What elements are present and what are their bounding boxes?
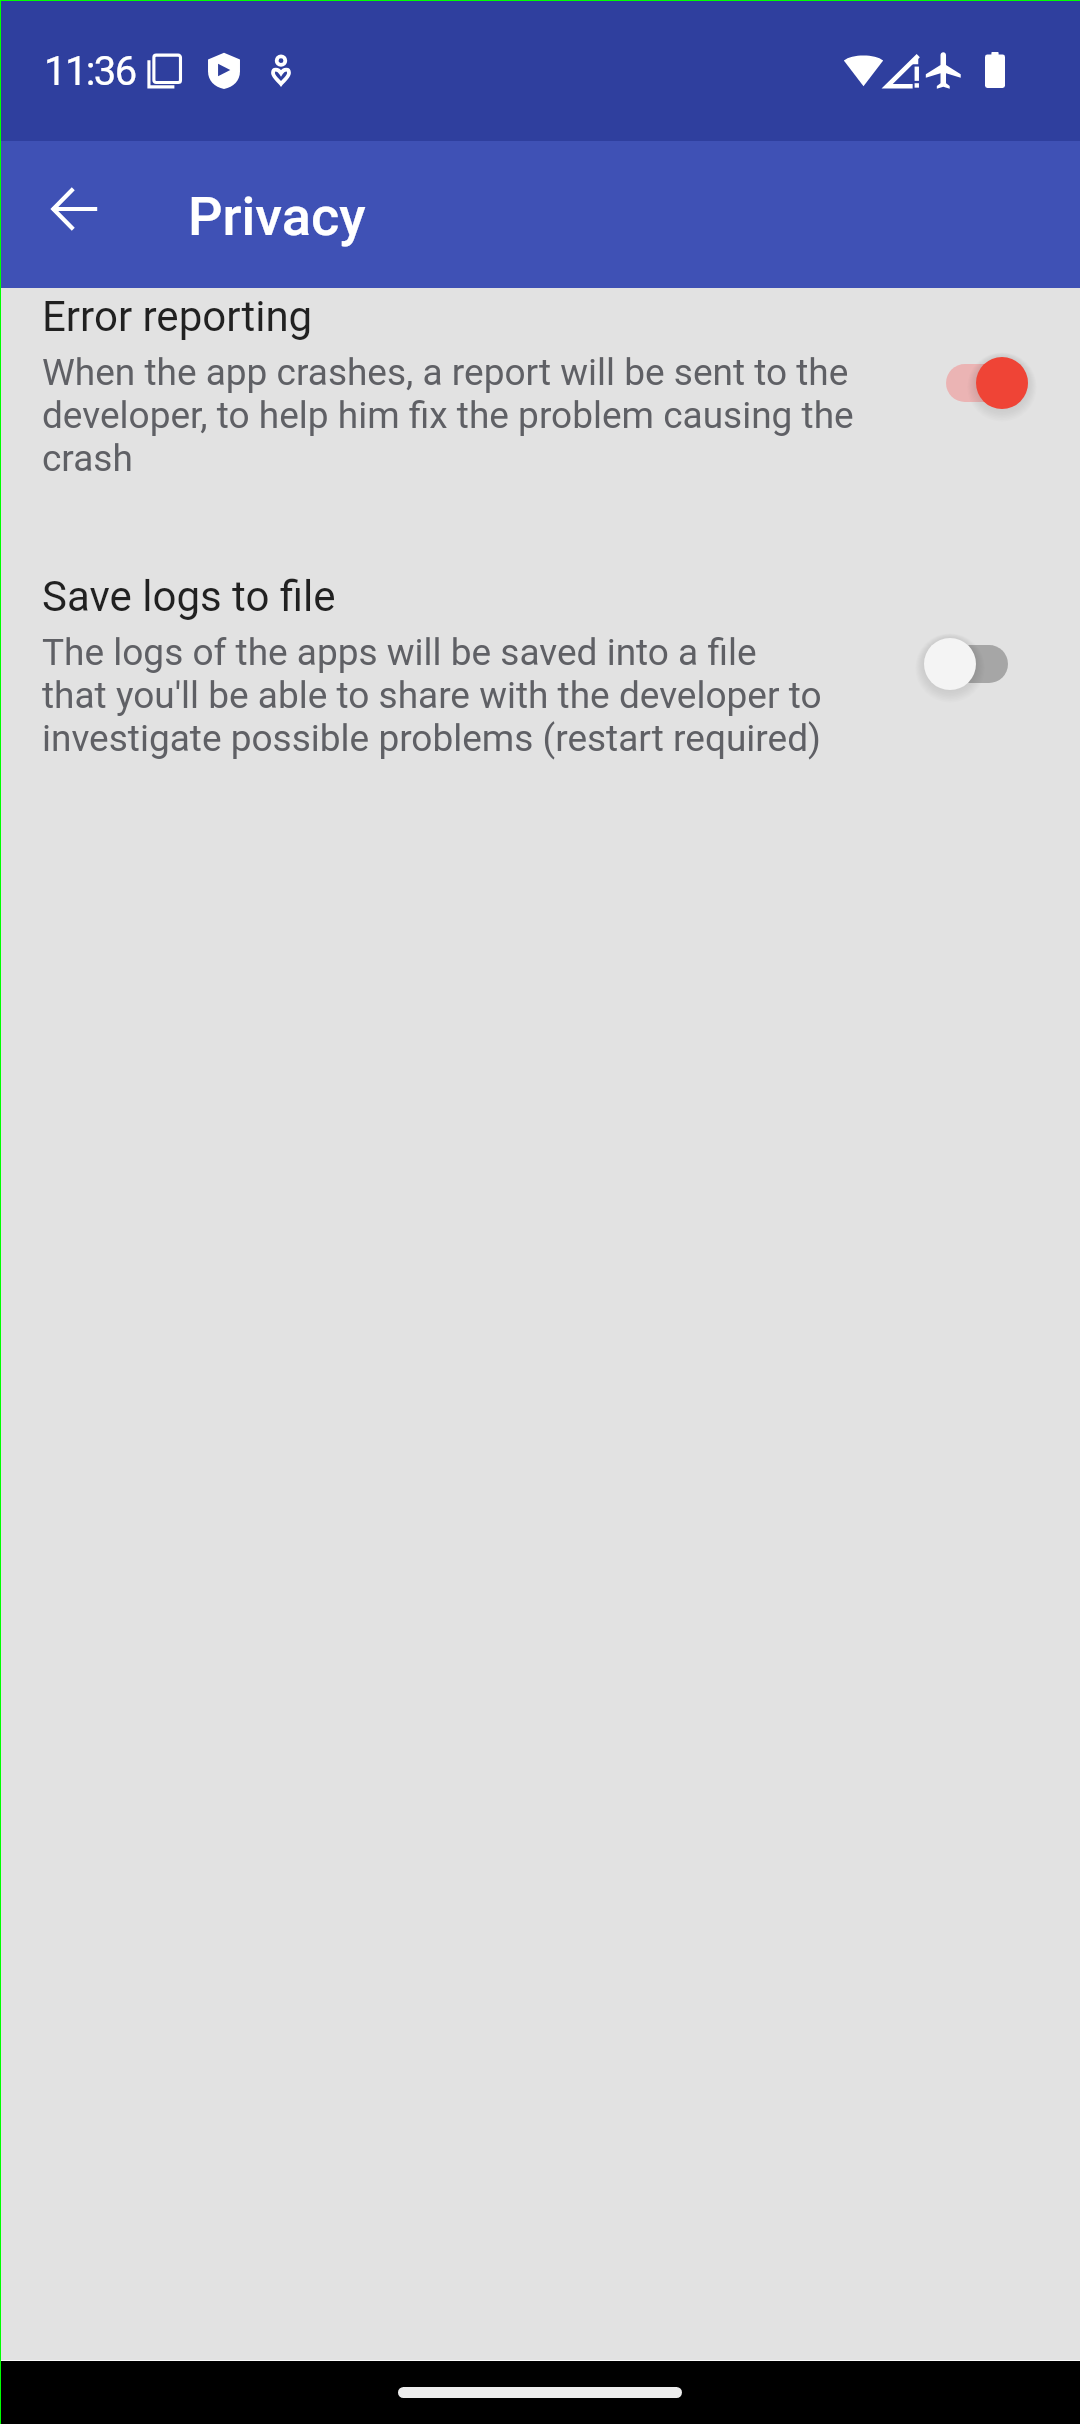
button[interactable]: Navigate up: [26, 161, 122, 257]
button[interactable]: Error reporting: [0, 288, 1080, 560]
staticText: When the app crashes, a report will be s…: [42, 351, 922, 480]
staticText: Save logs to file: [42, 570, 336, 622]
staticText: 11:36: [44, 48, 136, 95]
staticText: Error reporting: [42, 290, 313, 342]
staticText: Privacy: [188, 185, 366, 248]
staticText: The logs of the apps will be saved into …: [42, 631, 823, 760]
button[interactable]: Save logs to file: [0, 568, 1080, 840]
